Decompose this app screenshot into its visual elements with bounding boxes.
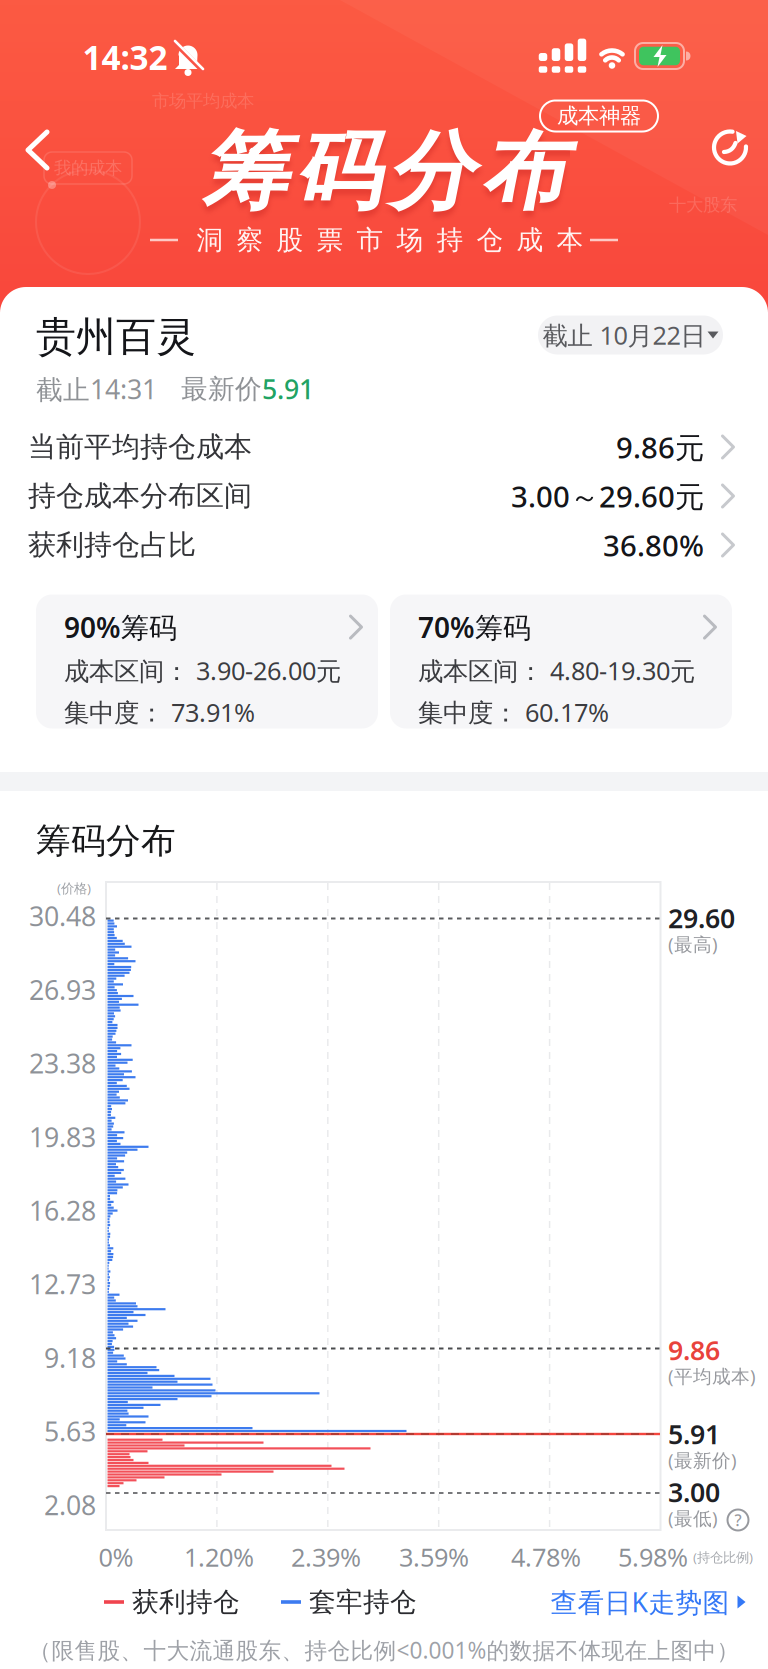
staticText: (平均成本): [668, 1364, 756, 1388]
staticText: 集中度： 60.17%: [418, 695, 609, 729]
button[interactable]: 截止 10月22日: [538, 315, 723, 354]
staticText: 5.91: [262, 371, 314, 407]
staticText: 我的成本: [54, 157, 122, 179]
staticText: 30.48: [29, 898, 96, 934]
button[interactable]: 当前平均持仓成本: [28, 423, 740, 471]
staticText: 截止 10月22日: [542, 318, 705, 352]
staticText: 筹码分布: [202, 120, 566, 224]
staticText: (价格): [57, 879, 91, 897]
staticText: 1.20%: [184, 1540, 254, 1574]
staticText: 获利持仓占比: [28, 528, 196, 562]
staticText: 9.86元: [616, 427, 704, 466]
button[interactable]: 说明: [725, 1507, 751, 1533]
staticText: 套牢持仓: [309, 1586, 417, 1618]
staticText: 最新价: [157, 373, 262, 405]
staticText: 市场平均成本: [152, 90, 254, 112]
staticText: 集中度： 73.91%: [64, 695, 255, 729]
staticText: (最高): [668, 932, 718, 956]
staticText: 5.91: [668, 1416, 720, 1452]
staticText: 23.38: [29, 1045, 96, 1081]
staticText: 成本区间： 3.90-26.00元: [64, 654, 341, 687]
staticText: 9.18: [44, 1340, 96, 1375]
staticText: 持仓成本分布区间: [28, 479, 252, 513]
staticText: 3.59%: [399, 1540, 469, 1574]
staticText: 14:32: [82, 35, 167, 79]
staticText: 当前平均持仓成本: [28, 430, 252, 464]
staticText: 19.83: [29, 1119, 96, 1154]
staticText: 成本神器: [557, 103, 641, 129]
staticText: 筹码分布: [36, 820, 176, 862]
staticText: 16.28: [29, 1193, 96, 1228]
staticText: ?: [734, 1509, 741, 1531]
staticText: 4.78%: [511, 1540, 581, 1574]
staticText: (最新价): [668, 1448, 737, 1472]
staticText: 12.73: [29, 1266, 96, 1302]
staticText: 0%: [98, 1540, 133, 1574]
button[interactable]: 刷新: [709, 126, 753, 170]
button[interactable]: 持仓成本分布区间: [28, 472, 740, 520]
button[interactable]: 90%筹码: [36, 594, 378, 728]
button[interactable]: 获利持仓占比: [28, 521, 740, 569]
staticText: （限售股、十大流通股东、持仓比例<0.001%的数据不体现在上图中）: [28, 1635, 739, 1665]
staticText: 2.39%: [291, 1540, 361, 1574]
button[interactable]: 查看日K走势图: [550, 1584, 745, 1620]
staticText: 5.63: [44, 1413, 96, 1449]
staticText: 29.60: [668, 900, 735, 936]
staticText: (最低): [668, 1506, 718, 1530]
staticText: 获利持仓: [132, 1586, 240, 1618]
staticText: 3.00～29.60元: [511, 476, 704, 515]
staticText: 成本区间： 4.80-19.30元: [418, 654, 695, 687]
staticText: 十大股东: [669, 194, 737, 216]
staticText: 70%筹码: [418, 608, 531, 646]
staticText: 5.98%: [618, 1540, 688, 1574]
staticText: 3.00: [668, 1474, 720, 1510]
button[interactable]: 返回: [17, 126, 65, 174]
staticText: 截止14:31: [36, 371, 157, 407]
staticText: 9.86: [668, 1332, 720, 1368]
staticText: 90%筹码: [64, 608, 177, 646]
staticText: 26.93: [29, 972, 96, 1007]
staticText: 贵州百灵: [36, 312, 196, 361]
staticText: 36.80%: [603, 525, 704, 564]
button[interactable]: 70%筹码: [390, 594, 732, 728]
staticText: 2.08: [44, 1487, 96, 1522]
staticText: 洞察股票市场持仓成本: [196, 224, 583, 256]
staticText: (持仓比例): [693, 1548, 753, 1566]
staticText: 查看日K走势图: [550, 1584, 729, 1620]
